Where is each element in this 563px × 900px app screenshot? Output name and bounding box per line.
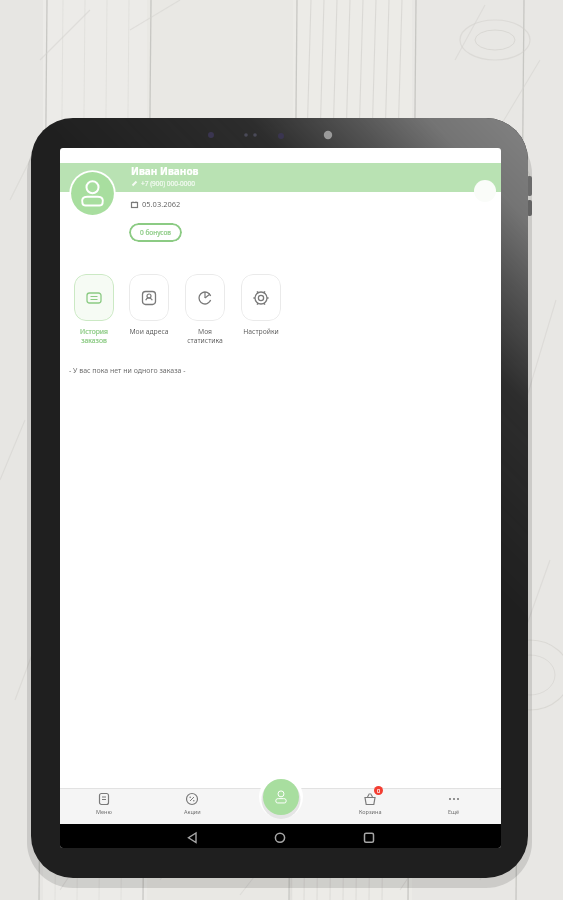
staticText: 0 бонусов [140,228,171,237]
button[interactable] [263,779,299,815]
staticText: Меню [96,808,112,815]
button[interactable]: Акции [176,792,208,815]
staticText: Настройки [233,327,289,336]
button[interactable]: Меню [88,792,120,815]
button[interactable] [74,274,114,321]
staticText: Ещё [448,808,460,815]
button[interactable] [185,274,225,321]
button[interactable] [241,274,281,321]
staticText: Мои адреса [121,327,177,336]
staticText: Акции [184,808,201,815]
button[interactable]: 0 бонусов [129,223,182,242]
button[interactable] [474,180,496,202]
staticText: Корзина [359,808,382,815]
staticText: Моя статистика [177,327,233,345]
staticText: 0 [377,787,381,794]
staticText: +7 (900) 000-0000 [141,179,195,188]
staticText: 05.03.2062 [142,199,181,209]
button[interactable]: Ещё [438,792,470,815]
staticText: История заказов [66,327,122,345]
button[interactable]: Корзина [354,792,386,815]
staticText: - У вас пока нет ни одного заказа - [69,366,186,376]
staticText: Иван Иванов [131,164,199,178]
button[interactable] [129,274,169,321]
